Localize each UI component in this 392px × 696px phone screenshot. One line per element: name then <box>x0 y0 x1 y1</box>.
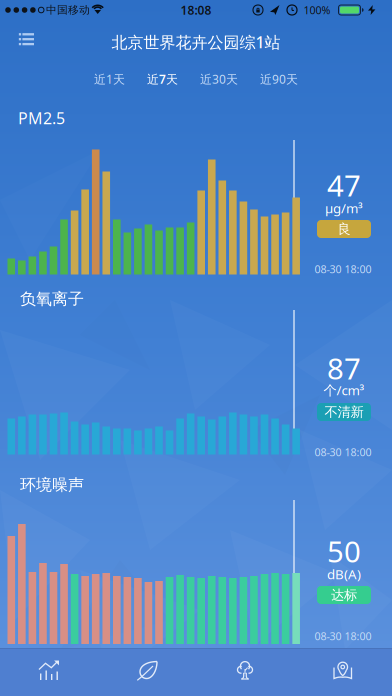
staticText: 近7天 <box>147 71 178 87</box>
button[interactable]: Map <box>294 646 392 694</box>
staticText: 环境噪声 <box>20 475 84 495</box>
staticText: 近1天 <box>94 71 125 87</box>
button[interactable]: 近1天 <box>94 71 125 87</box>
button[interactable]: Monitoring data <box>0 646 98 694</box>
staticText: 良 <box>337 221 350 237</box>
staticText: 个/cm³ <box>323 381 364 399</box>
button[interactable]: Parks <box>196 646 294 694</box>
staticText: µg/m³ <box>325 199 363 217</box>
button[interactable]: 近7天 <box>147 71 178 87</box>
staticText: 达标 <box>331 587 357 603</box>
staticText: 47 <box>327 165 361 204</box>
staticText: 08-30 18:00 <box>314 445 371 459</box>
button[interactable]: Air quality <box>98 646 196 694</box>
staticText: 近90天 <box>260 71 298 87</box>
staticText: PM2.5 <box>18 107 65 129</box>
staticText: 08-30 18:00 <box>314 262 371 276</box>
staticText: 负氧离子 <box>20 289 84 309</box>
staticText: 100% <box>303 3 330 17</box>
staticText: dB(A) <box>327 565 361 583</box>
staticText: 87 <box>327 348 361 387</box>
staticText: 18:08 <box>180 2 211 18</box>
staticText: 08-30 18:00 <box>314 629 371 643</box>
staticText: 50 <box>327 531 361 570</box>
button[interactable]: 近90天 <box>260 71 298 87</box>
staticText: 北京世界花卉公园综1站 <box>111 31 280 53</box>
staticText: 不清新 <box>324 404 363 420</box>
staticText: 近30天 <box>200 71 238 87</box>
staticText: 中国移动 <box>46 3 90 16</box>
button[interactable]: Menu <box>8 25 52 55</box>
button[interactable]: 近30天 <box>200 71 238 87</box>
